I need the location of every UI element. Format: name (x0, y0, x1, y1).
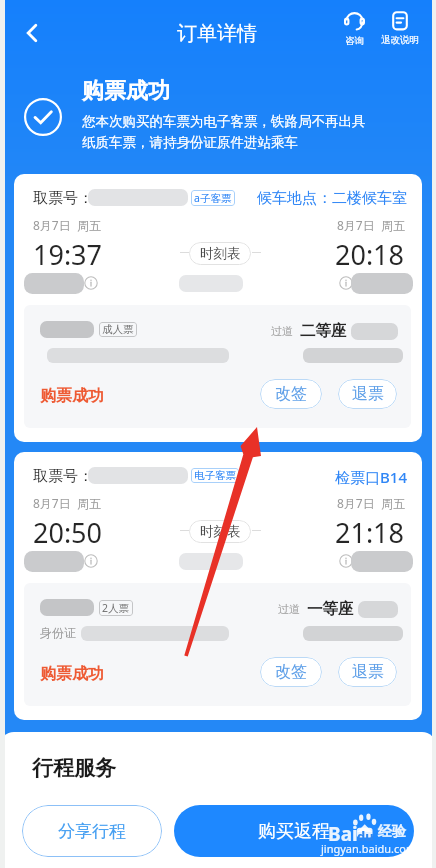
staticText: 购票成功 (82, 77, 170, 105)
staticText: 8月7日 周五 (337, 217, 405, 233)
staticText: 20:50 (33, 514, 103, 551)
button[interactable]: 改签 (260, 379, 322, 409)
staticText: 购票成功 (40, 386, 104, 406)
staticText: 改签 (275, 662, 307, 682)
staticText: 时刻表 (200, 245, 241, 262)
staticText: 购买返程 (258, 820, 330, 843)
staticText: 取票号： (33, 189, 93, 208)
staticText: 成人票 (102, 323, 134, 336)
staticText: 一等座 (307, 599, 354, 619)
staticText: 19:37 (33, 236, 103, 273)
button[interactable]: 退票 (338, 379, 397, 409)
staticText: 退改说明 (381, 34, 419, 46)
staticText: 咨询 (345, 35, 364, 47)
button[interactable]: 分享行程 (22, 805, 162, 857)
button[interactable]: Back (10, 11, 54, 55)
staticText: 过道 (278, 602, 300, 616)
staticText: 身份证 (40, 625, 76, 640)
staticText: 候车地点：二楼候车室 (257, 189, 407, 208)
staticText: 改签 (275, 384, 307, 404)
staticText: 您本次购买的车票为电子客票，铁路局不再出具 (82, 113, 366, 130)
staticText: Bai (328, 821, 358, 847)
button[interactable]: Consult (340, 11, 369, 47)
staticText: 20:18 (335, 236, 405, 273)
staticText: 检票口B14 (335, 467, 407, 487)
staticText: 二等座 (300, 321, 347, 341)
button[interactable]: 时刻表 (189, 242, 251, 265)
staticText: 过道 (271, 324, 293, 338)
staticText: 行程服务 (32, 755, 116, 781)
button[interactable]: 退票 (338, 657, 397, 687)
button[interactable]: 购买返程 (174, 805, 414, 857)
staticText: 分享行程 (58, 821, 126, 842)
button[interactable]: 取票号： (14, 452, 422, 720)
staticText: 纸质车票，请持身份证原件进站乘车 (82, 134, 298, 151)
staticText: 退票 (352, 662, 384, 682)
button[interactable]: 取票号： (14, 174, 422, 442)
staticText: 8月7日 周五 (33, 217, 101, 233)
staticText: a子客票 (194, 191, 232, 205)
staticText: 时刻表 (200, 523, 241, 540)
button[interactable]: Refund policy (377, 11, 423, 46)
staticText: 2人票 (102, 601, 130, 615)
button[interactable]: 时刻表 (189, 520, 251, 543)
staticText: 电子客票 (194, 469, 236, 482)
staticText: 经验 (378, 823, 406, 841)
button[interactable]: 改签 (260, 657, 322, 687)
staticText: 8月7日 周五 (33, 495, 101, 511)
staticText: du (357, 827, 374, 845)
staticText: 退票 (352, 384, 384, 404)
staticText: 购票成功 (40, 664, 104, 684)
staticText: 订单详情 (177, 21, 257, 46)
staticText: 取票号： (33, 467, 93, 486)
staticText: 8月7日 周五 (337, 495, 405, 511)
staticText: 21:18 (335, 514, 405, 551)
staticText: jingyan.baidu.com (321, 841, 417, 856)
